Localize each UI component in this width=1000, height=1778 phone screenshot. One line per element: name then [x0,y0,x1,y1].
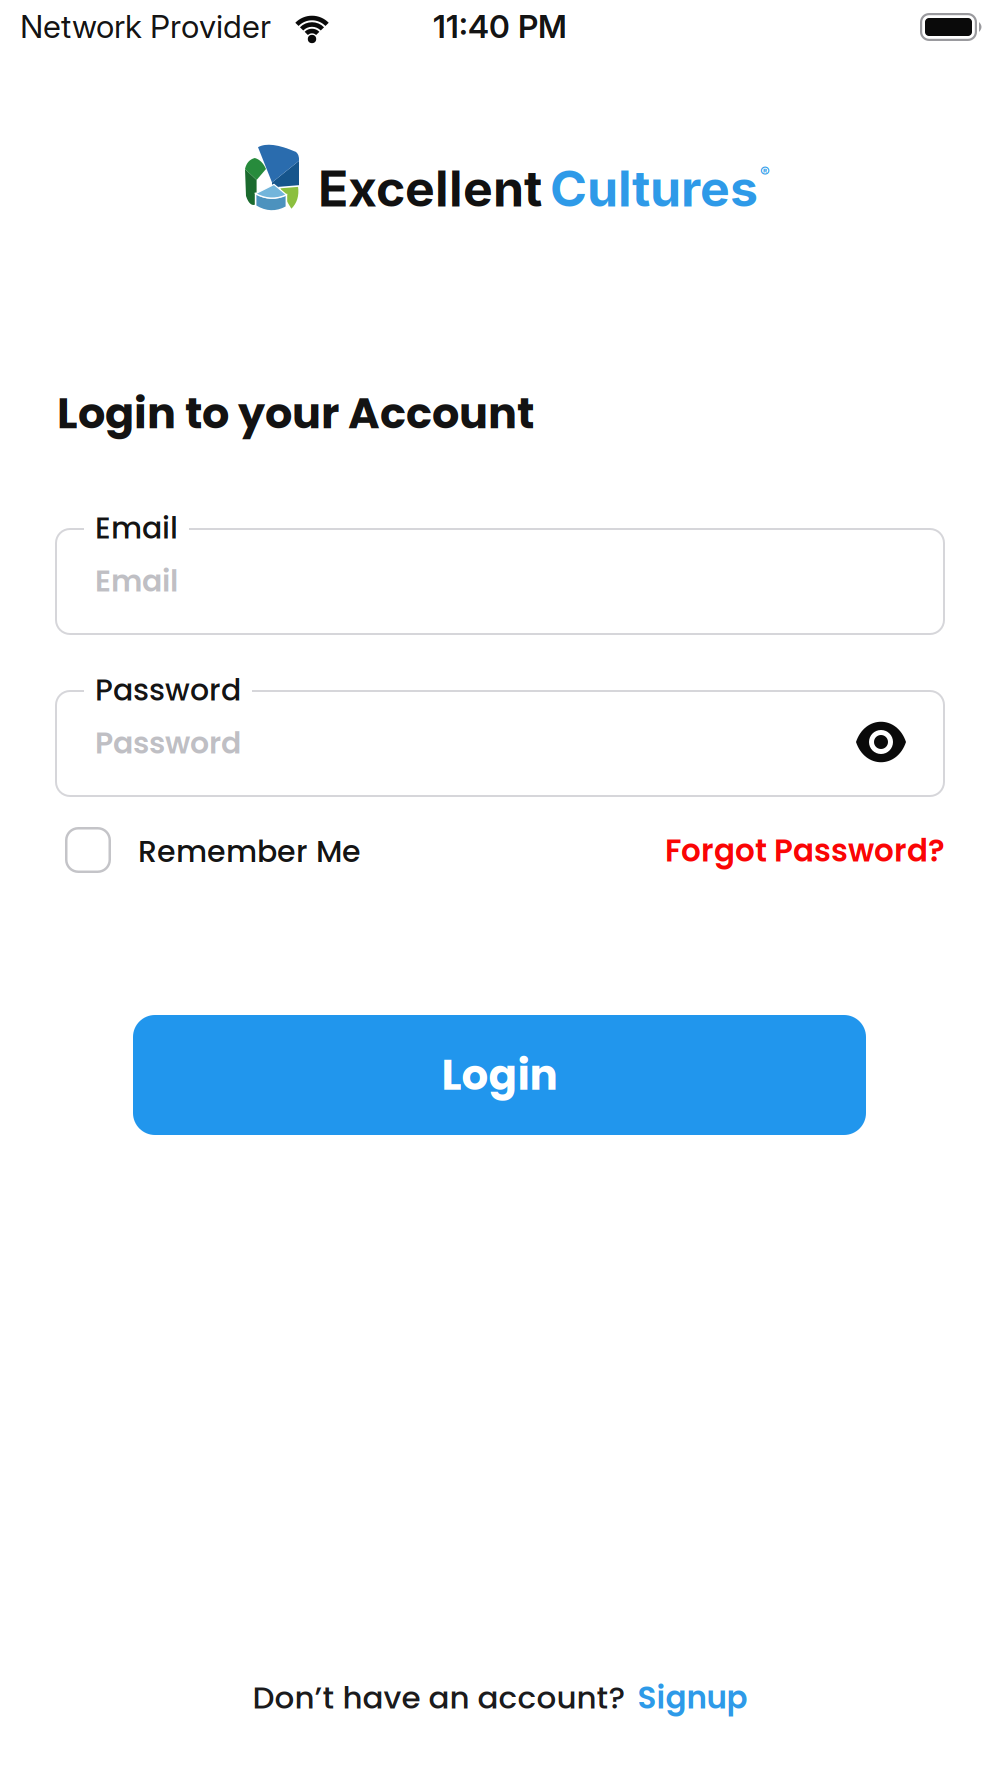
staticText: Password [95,669,241,711]
staticText: Email [95,560,178,602]
staticText: Login [441,1046,557,1104]
button[interactable]: Remember Me [65,827,361,873]
staticText: Password [95,722,241,764]
button[interactable]: Forgot Password? [665,829,945,872]
staticText: 11:40 PM [433,7,567,46]
staticText: Forgot Password? [665,829,945,872]
button[interactable]: Signup [637,1676,747,1719]
staticText: Signup [637,1676,747,1719]
button[interactable]: Login [133,1015,866,1135]
staticText: Network Provider [20,7,271,46]
staticText: ® [760,163,770,181]
staticText: Excellent [318,158,542,218]
staticText: Don’t have an account? [252,1676,625,1719]
staticText: Remember Me [138,830,361,872]
staticText: Email [95,507,178,549]
button[interactable]: Show password [856,721,906,763]
staticText: Cultures [550,158,758,218]
staticText: Login to your Account [57,383,534,443]
